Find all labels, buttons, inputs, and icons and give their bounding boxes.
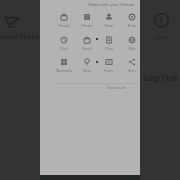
button[interactable]: Log Out <box>144 72 178 84</box>
button[interactable]: Notes <box>98 57 120 73</box>
staticText: Nearby <box>53 23 75 28</box>
button[interactable]: Docs <box>98 35 120 51</box>
button[interactable]: Bluetooth <box>53 57 75 73</box>
staticText: Photos <box>76 23 98 28</box>
button[interactable]: Drive <box>121 12 143 28</box>
button[interactable]: Maps <box>76 57 98 73</box>
staticText: Maps <box>76 68 98 73</box>
button[interactable]: Photos <box>76 12 98 28</box>
staticText: Share with your friends <box>40 2 134 8</box>
button[interactable]: Nearby <box>53 12 75 28</box>
button[interactable]: Omar <box>98 12 120 28</box>
button[interactable]: Gmail <box>76 35 98 51</box>
staticText: Show more <box>107 85 127 90</box>
staticText: Omar <box>98 23 120 28</box>
button[interactable]: Halal Store <box>0 31 39 41</box>
staticText: Gmail <box>76 46 98 51</box>
staticText: Clock <box>53 46 75 51</box>
button[interactable]: Share <box>121 57 143 73</box>
button[interactable]: Clock <box>53 35 75 51</box>
staticText: Web <box>121 46 143 51</box>
staticText: Notes <box>98 68 120 73</box>
other: About <box>154 13 169 28</box>
button[interactable]: Web <box>121 35 143 51</box>
staticText: Drive <box>121 23 143 28</box>
staticText: Share <box>121 68 143 73</box>
staticText: Docs <box>98 46 120 51</box>
staticText: Halal Store <box>0 31 39 41</box>
staticText: Bluetooth <box>53 68 75 73</box>
staticText: Log Out <box>144 72 178 84</box>
button[interactable]: About <box>152 13 171 41</box>
other: Halal Store logo <box>4 15 20 29</box>
